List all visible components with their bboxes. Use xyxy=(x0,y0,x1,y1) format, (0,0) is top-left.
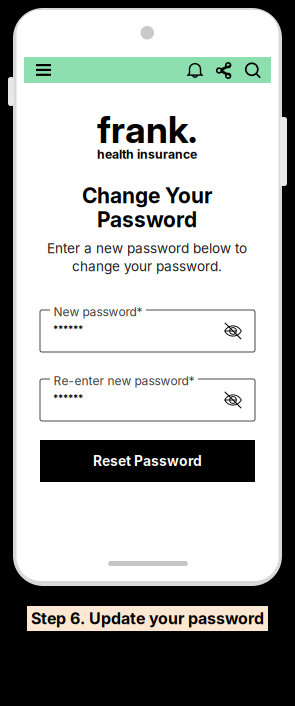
staticText: frank. xyxy=(97,107,197,152)
button[interactable]: Show New password* xyxy=(218,316,248,346)
button[interactable]: Search xyxy=(241,57,265,83)
staticText: Reset Password xyxy=(93,453,202,469)
staticText: New password* xyxy=(53,304,142,319)
staticText: Enter a new password below to xyxy=(47,240,247,256)
button[interactable]: Show Re-enter new password* xyxy=(218,385,248,415)
staticText: Password xyxy=(97,207,197,232)
staticText: Re-enter new password* xyxy=(53,373,194,388)
button[interactable]: Notifications xyxy=(183,57,207,83)
staticText: ****** xyxy=(53,392,83,404)
button[interactable]: Menu xyxy=(31,57,55,83)
staticText: change your password. xyxy=(72,258,222,274)
staticText: health insurance xyxy=(97,147,197,162)
staticText: ****** xyxy=(53,323,83,335)
staticText: Step 6. Update your password xyxy=(31,609,264,628)
button[interactable]: Share xyxy=(212,57,236,83)
button[interactable]: Reset Password xyxy=(40,440,255,482)
staticText: Change Your xyxy=(82,183,212,208)
